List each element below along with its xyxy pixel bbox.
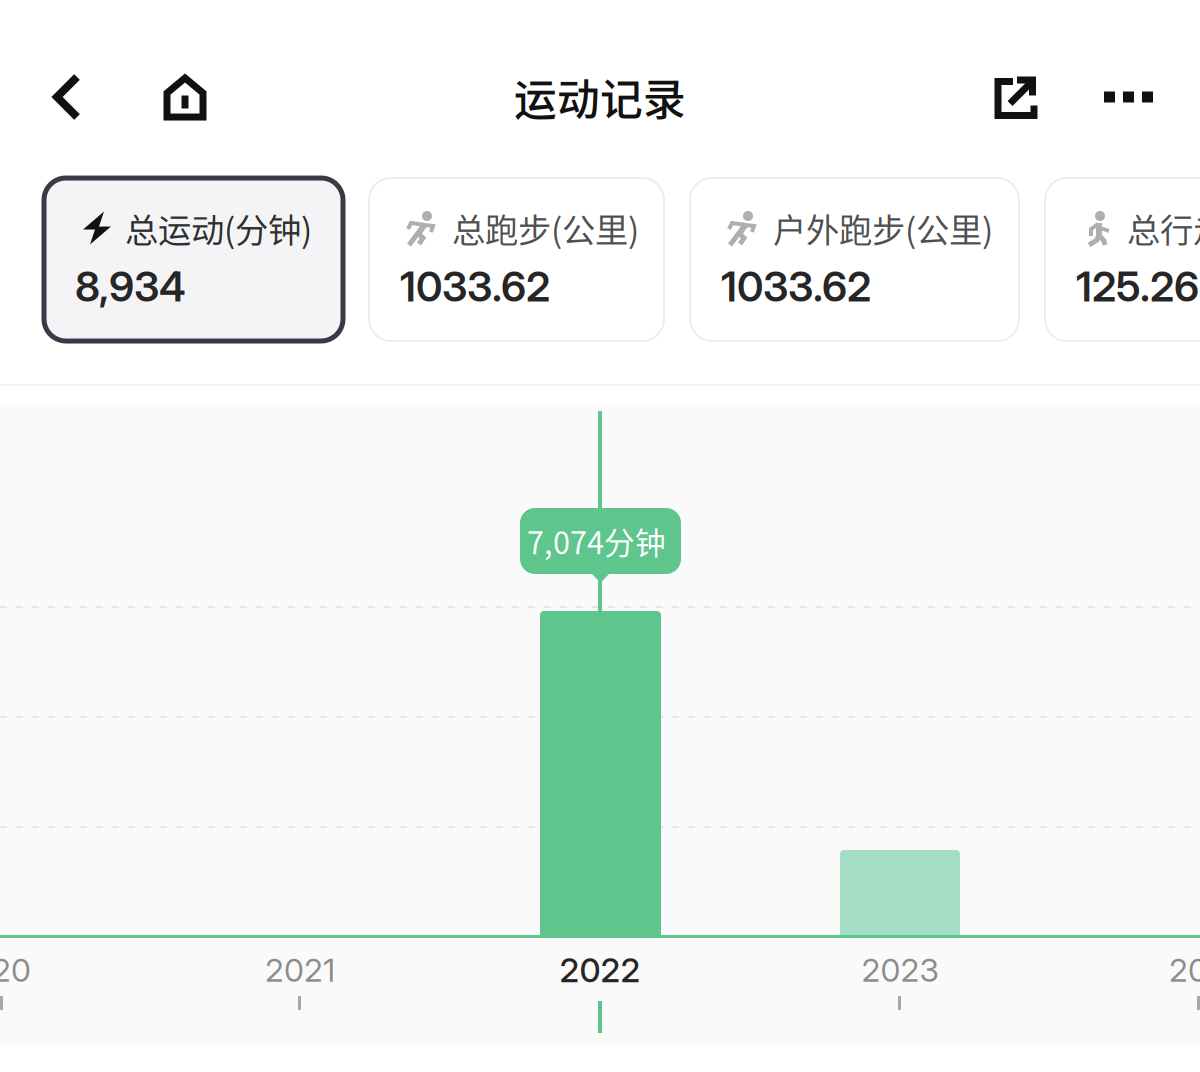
button[interactable]: 户外跑步(公里)	[690, 178, 1019, 341]
button[interactable]: Back	[52, 73, 133, 121]
staticText: 7,074分钟	[527, 519, 666, 563]
staticText: 20	[0, 951, 31, 989]
button[interactable]: Home	[133, 73, 207, 121]
staticText: 125.26	[1076, 261, 1199, 311]
button[interactable]: More	[1082, 73, 1153, 121]
button[interactable]: 总跑步(公里)	[369, 178, 664, 341]
staticText: 总运动(分钟)	[125, 204, 312, 252]
button[interactable]: Share	[994, 73, 1082, 121]
staticText: 8,934	[75, 261, 186, 311]
staticText: 2023	[861, 951, 938, 989]
staticText: 2021	[265, 951, 335, 989]
staticText: 1033.62	[721, 261, 871, 311]
staticText: 运动记录	[514, 66, 686, 128]
button[interactable]: 总行走(公里)	[1045, 178, 1200, 341]
staticText: 户外跑步(公里)	[773, 204, 993, 252]
staticText: 总跑步(公里)	[452, 204, 639, 252]
staticText: 1033.62	[400, 261, 550, 311]
staticText: 2022	[559, 950, 640, 990]
staticText: 20	[1169, 951, 1200, 989]
staticText: 总行走(公里)	[1127, 204, 1200, 252]
button[interactable]: 总运动(分钟)	[44, 178, 343, 341]
